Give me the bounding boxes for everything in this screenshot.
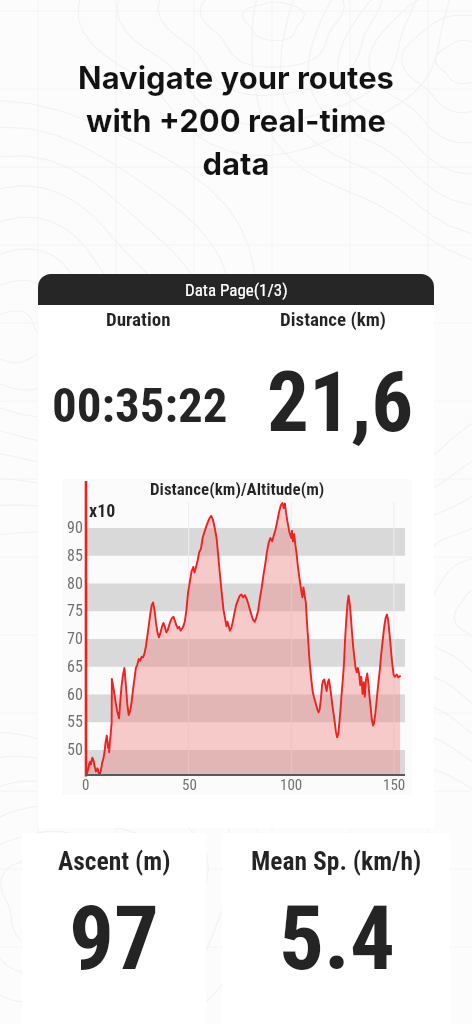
staticText: Mean Sp. (km/h) (251, 846, 422, 876)
staticText: Distance(km)/Altitude(m) (150, 479, 325, 499)
staticText: 21,6 (267, 354, 414, 451)
staticText: 150 (383, 776, 406, 794)
button[interactable]: Ascent (m) (22, 833, 206, 1024)
staticText: Distance (km) (280, 308, 386, 330)
staticText: 55 (67, 712, 83, 731)
staticText: Data Page(1/3) (185, 280, 288, 300)
staticText: 60 (67, 685, 83, 704)
staticText: 80 (67, 574, 83, 593)
staticText: Duration (106, 308, 171, 330)
staticText: Navigate your routes with +200 real-time… (0, 59, 472, 183)
staticText: x10 (89, 500, 116, 521)
staticText: 97 (69, 886, 160, 990)
staticText: 75 (67, 601, 83, 620)
staticText: 70 (67, 629, 83, 648)
staticText: 50 (67, 740, 83, 759)
staticText: 65 (67, 657, 83, 676)
staticText: 0 (82, 776, 90, 794)
button[interactable]: Mean Sp. (km/h) (222, 833, 450, 1024)
staticText: 50 (182, 776, 197, 794)
button[interactable]: Data Page(1/3) (38, 274, 434, 828)
staticText: 100 (280, 776, 303, 794)
staticText: 00:35:22 (52, 377, 228, 434)
staticText: Ascent (m) (58, 846, 171, 876)
staticText: 5.4 (279, 886, 395, 990)
staticText: 85 (67, 546, 83, 565)
staticText: 90 (67, 518, 83, 537)
